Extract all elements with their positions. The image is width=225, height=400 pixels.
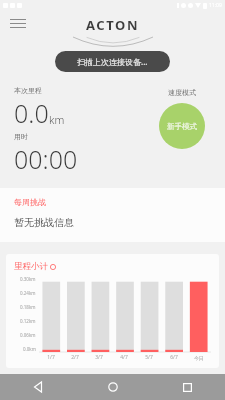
button[interactable]: Home: [75, 374, 150, 400]
staticText: 11:09: [209, 2, 222, 9]
staticText: 0.30km: [20, 276, 36, 282]
staticText: 0.18km: [20, 304, 36, 310]
button[interactable]: Back: [0, 374, 75, 400]
button[interactable]: 新手模式: [159, 103, 205, 149]
staticText: 3/7: [95, 354, 103, 361]
staticText: 新手模式: [167, 122, 197, 131]
staticText: 今日: [194, 355, 204, 361]
button[interactable]: Menu: [10, 19, 26, 31]
staticText: 00:00: [14, 142, 78, 176]
staticText: 0.06km: [20, 332, 36, 338]
staticText: 1/7: [47, 354, 55, 361]
staticText: 0.0km: [23, 346, 36, 352]
staticText: ACTON: [86, 16, 140, 34]
staticText: 5/7: [145, 354, 153, 361]
button[interactable]: 里程小计: [6, 254, 219, 368]
staticText: 0.24km: [20, 290, 36, 296]
staticText: 6/7: [170, 354, 178, 361]
staticText: km: [49, 112, 65, 127]
button[interactable]: 每周挑战: [0, 188, 225, 242]
staticText: 本次里程: [14, 86, 42, 95]
staticText: 4/7: [120, 354, 128, 361]
button[interactable]: 扫描上次连接设备...: [55, 51, 170, 72]
staticText: 每周挑战: [14, 197, 46, 207]
staticText: 2/7: [71, 354, 79, 361]
button[interactable]: Recents: [150, 374, 225, 400]
staticText: 0.12km: [20, 318, 36, 324]
staticText: 用时: [14, 132, 28, 141]
staticText: 扫描上次连接设备...: [77, 56, 148, 67]
staticText: 0.0: [14, 96, 49, 130]
staticText: 速度模式: [168, 88, 196, 97]
staticText: 里程小计: [14, 261, 48, 272]
staticText: 暂无挑战信息: [14, 216, 74, 229]
